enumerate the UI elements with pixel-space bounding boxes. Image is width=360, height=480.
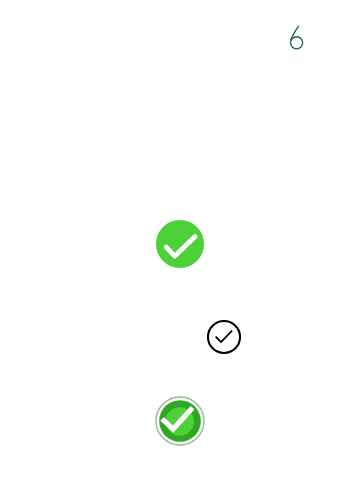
button[interactable]: Verified — [154, 395, 206, 447]
other: 6 — [284, 20, 312, 48]
button[interactable]: Check outline — [206, 319, 242, 355]
button[interactable]: Check — [156, 220, 204, 268]
